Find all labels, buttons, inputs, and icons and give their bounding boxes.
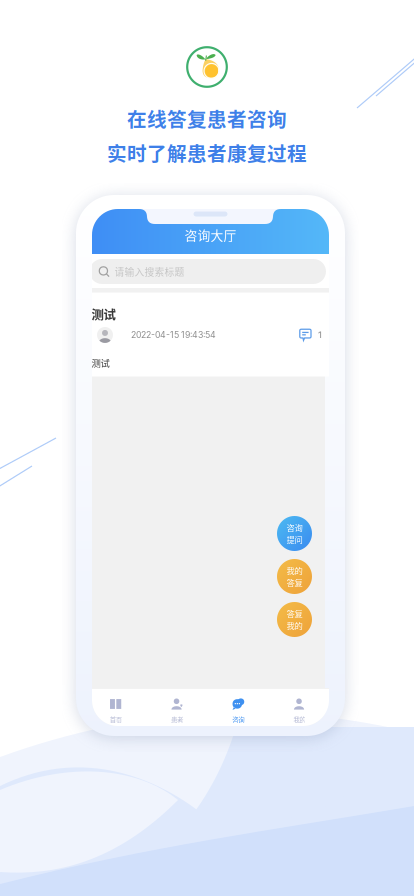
staticText: 答复 — [286, 607, 302, 619]
staticText: 我的 — [293, 715, 305, 724]
staticText: 测试 — [91, 305, 115, 323]
button[interactable]: 咨询 — [277, 516, 312, 551]
staticText: 实时了解患者康复过程 — [107, 138, 307, 167]
button[interactable]: 首页 — [85, 688, 146, 726]
staticText: 咨询大厅 — [184, 225, 236, 244]
staticText: 测试 — [91, 356, 109, 369]
button[interactable]: 我的 — [277, 559, 312, 594]
staticText: 我的 — [286, 619, 302, 631]
staticText: 提问 — [286, 533, 302, 545]
staticText: 在线答复患者咨询 — [127, 104, 287, 132]
staticText: 咨询 — [232, 715, 244, 724]
staticText: 2022-04-15 19:43:54 — [131, 330, 216, 340]
staticText: 咨询 — [286, 521, 302, 533]
staticText: 答复 — [286, 576, 302, 588]
button[interactable]: 我的 — [269, 688, 330, 726]
staticText: 我的 — [286, 564, 302, 576]
button[interactable]: 咨询 — [207, 688, 269, 726]
button[interactable]: 测试 — [88, 293, 333, 376]
staticText: 1 — [318, 329, 322, 341]
button[interactable]: 患者 — [146, 688, 207, 726]
staticText: 请输入搜索标题 — [114, 264, 184, 279]
staticText: 首页 — [110, 715, 122, 724]
staticText: 患者 — [171, 715, 183, 724]
button[interactable]: 答复 — [277, 602, 312, 637]
